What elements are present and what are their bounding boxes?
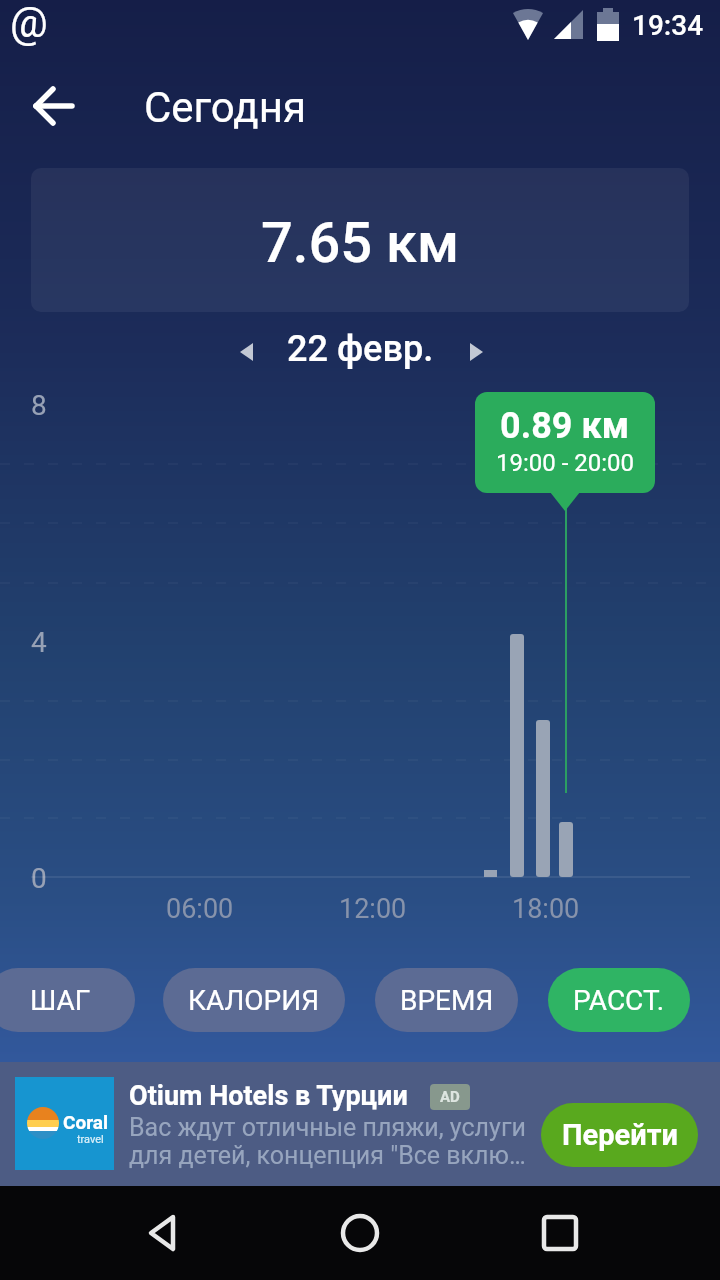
staticText: 06:00 [166,893,234,925]
staticText: 0 [31,862,47,895]
button[interactable] [452,332,500,372]
staticText: 18:00 [512,893,580,925]
staticText: Otium Hotels в Турции [129,1080,408,1112]
staticText: КАЛОРИЯ [188,984,320,1017]
staticText: ШАГ [30,984,91,1017]
button[interactable] [528,1201,592,1265]
staticText: 12:00 [339,893,407,925]
staticText: 19:00 - 20:00 [496,449,635,477]
staticText: 22 февр. [287,328,434,370]
staticText: Coral [63,1111,109,1133]
button[interactable]: Coral [0,1062,720,1186]
button[interactable] [130,1201,194,1265]
staticText: Перейти [562,1118,678,1152]
staticText: 8 [31,389,47,422]
button[interactable] [22,78,86,134]
staticText: 0.89 км [500,405,630,447]
button[interactable]: РАССТ. [548,968,690,1032]
staticText: AD [440,1088,460,1106]
staticText: @ [10,0,48,47]
button[interactable]: ВРЕМЯ [375,968,518,1032]
staticText: для детей, концепция "Все вклю… [129,1141,526,1170]
staticText: Вас ждут отличные пляжи, услуги [129,1113,526,1142]
staticText: РАССТ. [573,984,665,1017]
staticText: 4 [31,626,47,659]
staticText: Сегодня [144,83,306,132]
button[interactable] [328,1201,392,1265]
staticText: ВРЕМЯ [400,984,494,1017]
button[interactable] [222,332,270,372]
button[interactable]: Перейти [541,1103,698,1167]
button[interactable]: 0.89 км [475,392,655,493]
staticText: 7.65 км [261,210,460,276]
button[interactable]: КАЛОРИЯ [163,968,345,1032]
staticText: 19:34 [632,9,704,42]
staticText: travel [77,1133,104,1146]
button[interactable]: 7.65 км [31,168,689,312]
button[interactable]: ШАГ [0,968,135,1032]
